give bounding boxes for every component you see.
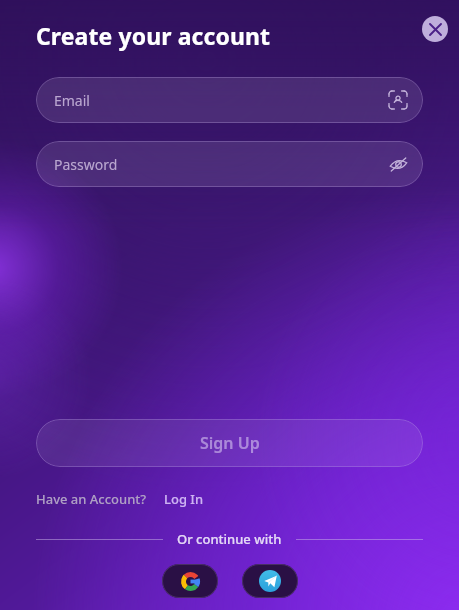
button[interactable]: Continue with Google — [162, 564, 218, 598]
staticText: Create your account — [36, 20, 271, 51]
button[interactable]: Sign Up — [36, 419, 423, 467]
button[interactable]: Log In — [147, 488, 208, 510]
staticText: Password — [54, 155, 387, 174]
button[interactable]: Close — [422, 16, 448, 42]
staticText: Or continue with — [177, 530, 282, 548]
button[interactable]: Password — [36, 141, 423, 187]
staticText: Email — [54, 91, 387, 110]
other: Show password — [387, 153, 409, 175]
other: Scan face — [387, 89, 409, 111]
button[interactable]: Continue with Telegram — [242, 564, 298, 598]
staticText: Log In — [164, 490, 204, 508]
staticText: Sign Up — [200, 432, 260, 454]
button[interactable]: Email — [36, 77, 423, 123]
staticText: Have an Account? — [36, 490, 147, 508]
